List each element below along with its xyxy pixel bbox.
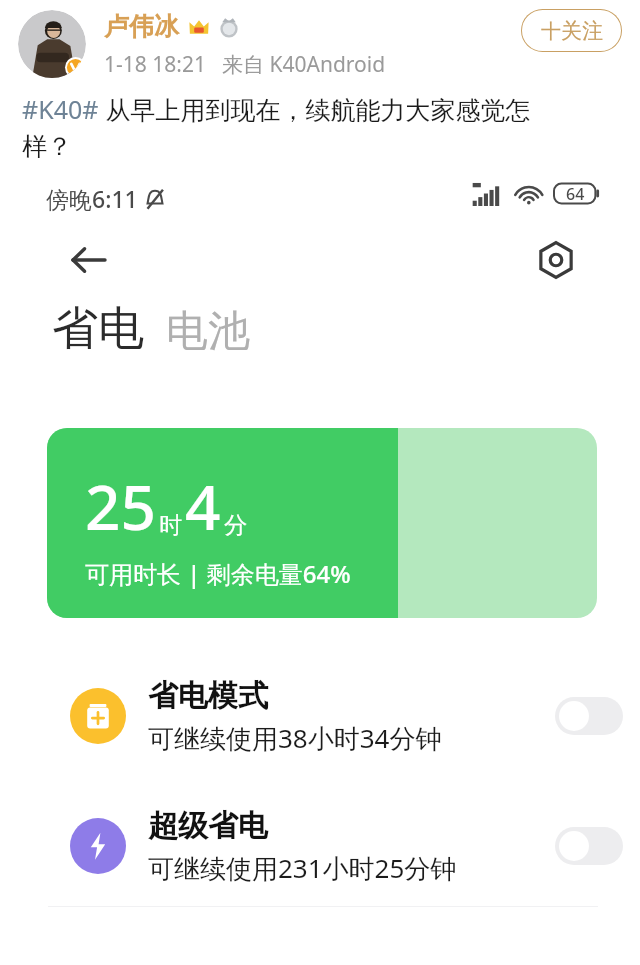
button[interactable]: 超级省电 toggle [555,827,623,865]
staticText: 可继续使用38小时34分钟 [148,720,442,756]
staticText: 从早上用到现在，续航能力大家感觉怎 [99,92,531,126]
staticText: 可继续使用231小时25分钟 [148,850,457,886]
button[interactable]: 省电模式 toggle [555,697,623,735]
staticText: 25 [85,464,156,548]
staticText: 卢伟冰 [104,11,179,42]
staticText: 关注 [561,18,603,44]
staticText: 省电模式 [148,677,268,715]
button[interactable]: 25 [47,428,597,618]
staticText: 省电 [52,300,144,358]
staticText: 电池 [166,305,250,358]
staticText: 超级省电 [148,807,268,845]
staticText: #K40# [22,92,99,126]
staticText: 十 [541,19,561,44]
button[interactable]: 超级省电 [48,794,637,898]
button[interactable]: Avatar [18,10,86,78]
button[interactable]: Back [60,232,116,288]
staticText: 时 [159,511,182,540]
button[interactable]: 省电 [52,300,144,358]
staticText: 分 [224,511,247,540]
staticText: 可用时长 | 剩余电量64% [85,557,351,590]
button[interactable]: Settings [528,232,584,288]
staticText: 1-18 18:21 [104,50,206,79]
staticText: 傍晚6:11 [46,183,138,214]
button[interactable]: 电池 [166,305,250,358]
button[interactable]: 省电模式 [48,664,637,768]
staticText: 样？ [22,131,72,162]
staticText: 来自 K40Android [222,50,386,79]
button[interactable]: 十 [521,9,622,52]
staticText: 64 [566,183,585,205]
staticText: 4 [185,464,221,548]
